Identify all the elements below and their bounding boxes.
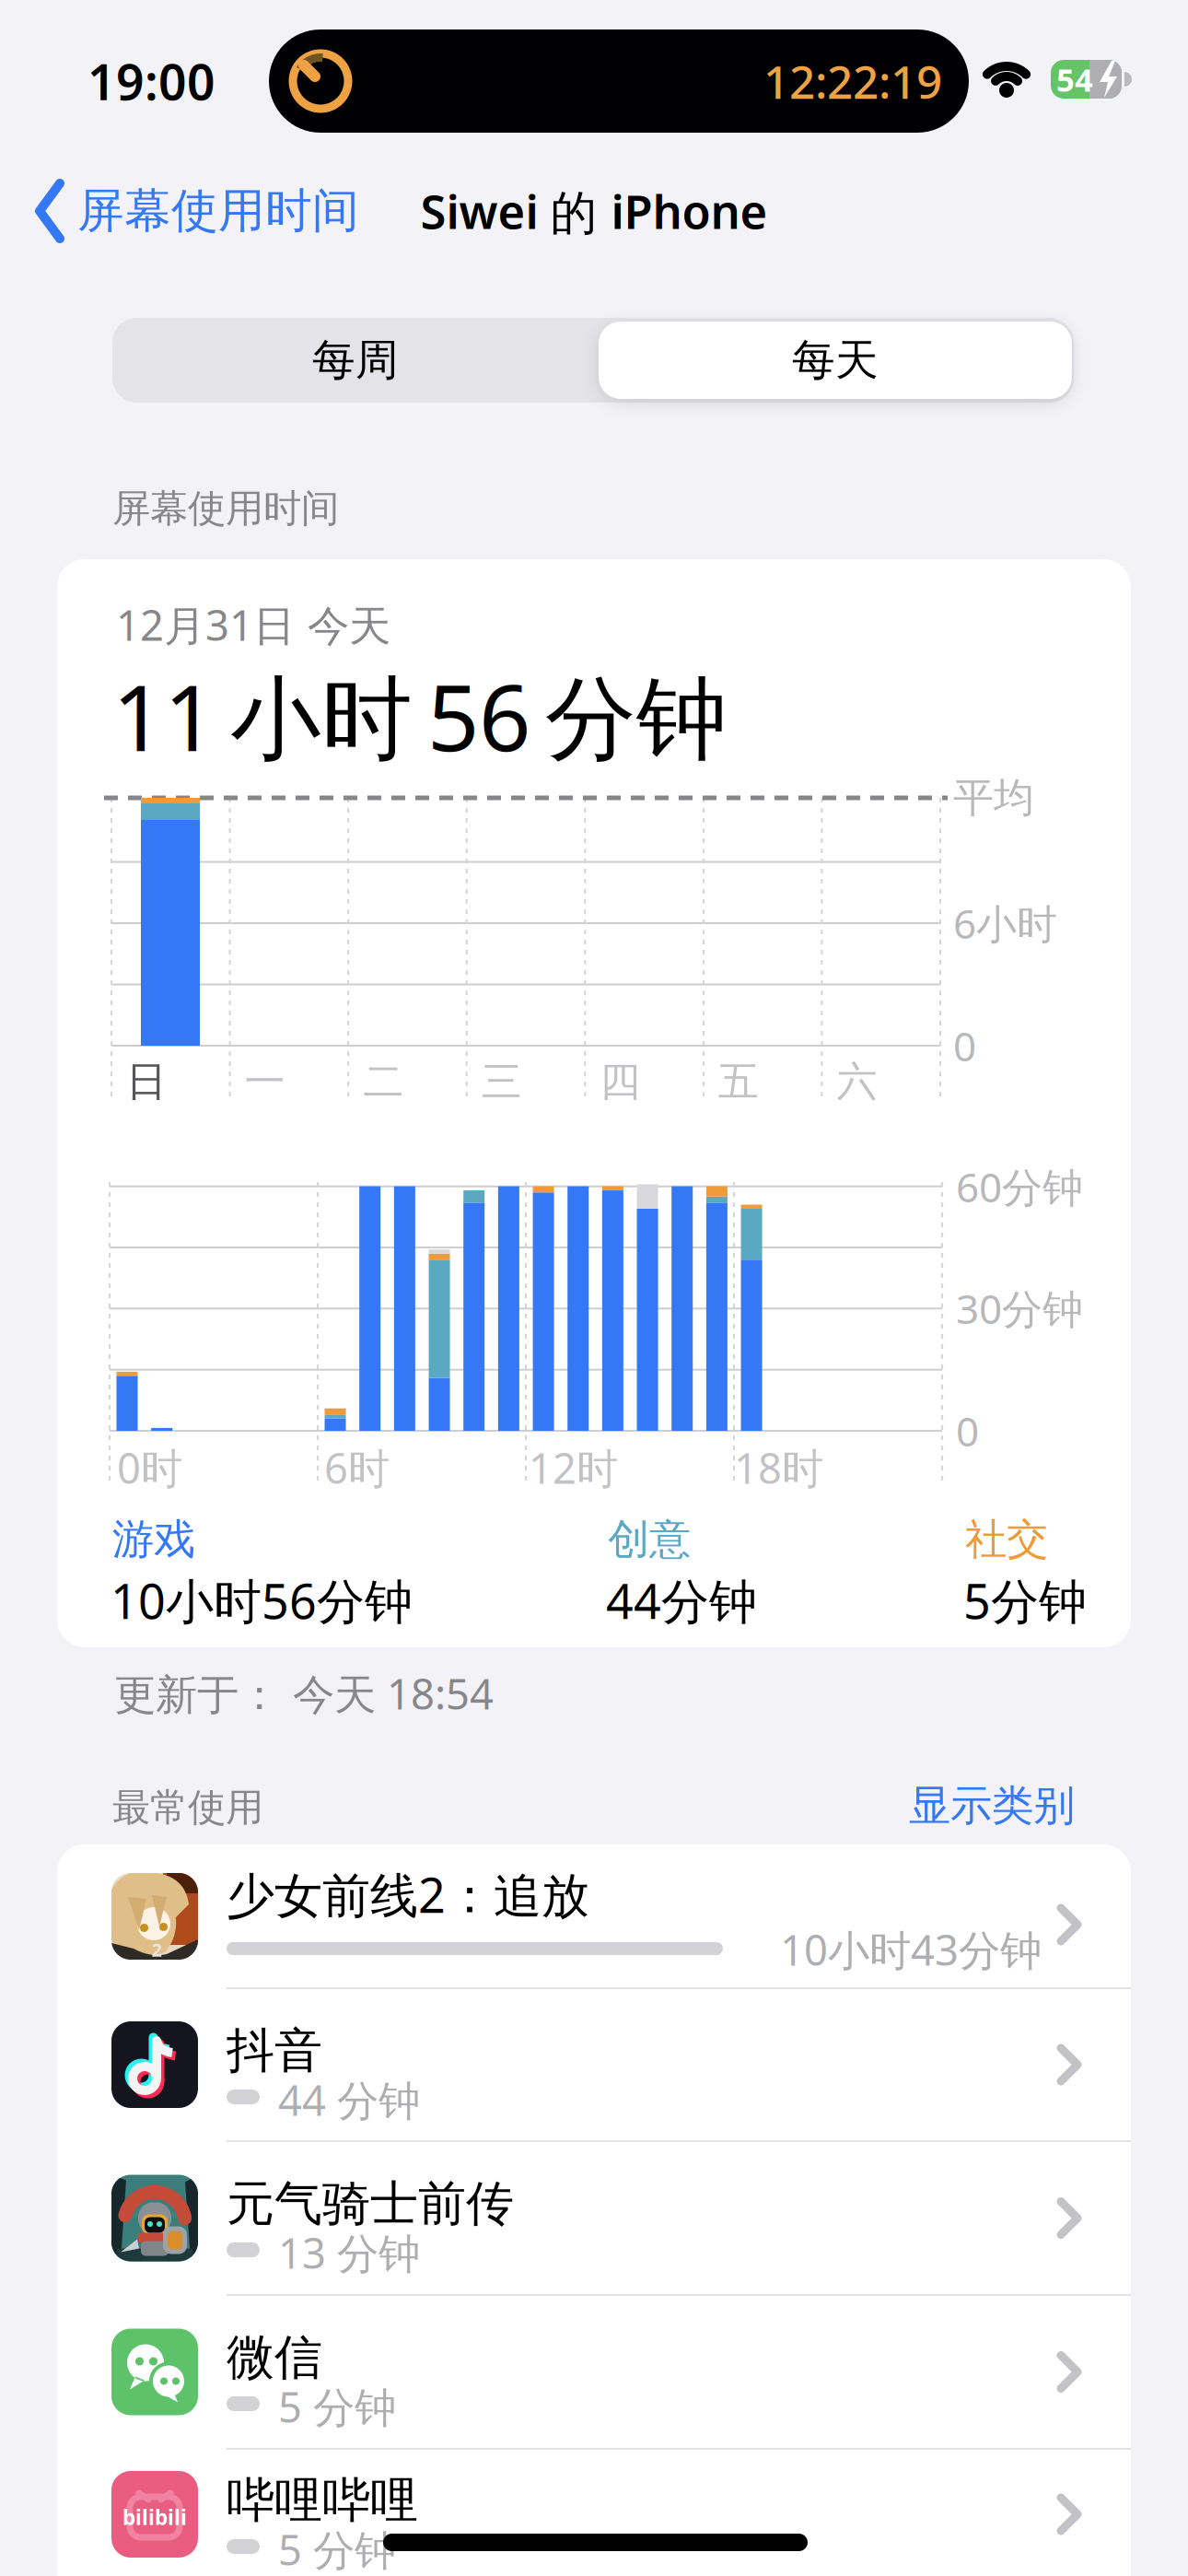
staticText: 54 xyxy=(1056,58,1093,100)
staticText: 12月31日 今天 xyxy=(116,597,390,652)
staticText: 六 xyxy=(837,1057,877,1107)
staticText: 6时 xyxy=(324,1440,390,1495)
staticText: bilibili xyxy=(122,2503,187,2531)
staticText: 抖音 xyxy=(227,2021,322,2080)
button[interactable]: 微信 xyxy=(57,2295,1131,2449)
staticText: 五 xyxy=(718,1057,759,1107)
staticText: 每周 xyxy=(312,334,399,387)
button[interactable]: 每天 xyxy=(599,322,1072,399)
staticText: 每天 xyxy=(792,334,879,387)
staticText: 四 xyxy=(600,1057,640,1107)
staticText: 30分钟 xyxy=(956,1281,1083,1335)
staticText: 最常使用 xyxy=(112,1784,263,1831)
staticText: 5 分钟 xyxy=(278,2522,396,2576)
button[interactable]: 2 xyxy=(57,1844,1131,1988)
staticText: 日 xyxy=(126,1057,167,1107)
staticText: 屏幕使用时间 xyxy=(112,485,339,532)
staticText: 10小时43分钟 xyxy=(780,1922,1042,1977)
staticText: 创意 xyxy=(608,1514,691,1565)
staticText: 游戏 xyxy=(112,1514,195,1565)
button[interactable]: bilibili xyxy=(57,2449,1131,2576)
staticText: 一 xyxy=(245,1057,285,1107)
staticText: 0时 xyxy=(117,1440,182,1495)
staticText: 11 小时 56 分钟 xyxy=(112,656,728,776)
staticText: 元气骑士前传 xyxy=(227,2174,514,2233)
staticText: 44 分钟 xyxy=(278,2072,420,2127)
staticText: 10小时56分钟 xyxy=(111,1569,413,1632)
staticText: 哔哩哔哩 xyxy=(227,2471,418,2530)
button[interactable]: 每周 xyxy=(0,0,486,85)
staticText: 微信 xyxy=(227,2328,322,2387)
staticText: 13 分钟 xyxy=(278,2225,420,2280)
staticText: 0 xyxy=(956,1404,979,1458)
staticText: 60分钟 xyxy=(956,1160,1083,1214)
staticText: 社交 xyxy=(965,1514,1048,1565)
button[interactable]: 屏幕使用时间 xyxy=(35,181,359,241)
staticText: 二 xyxy=(363,1057,403,1107)
staticText: Siwei 的 iPhone xyxy=(420,180,768,242)
staticText: 5 分钟 xyxy=(278,2379,396,2434)
staticText: 三 xyxy=(481,1057,522,1107)
staticText: 平均 xyxy=(953,773,1034,823)
staticText: 44分钟 xyxy=(606,1569,757,1632)
staticText: 屏幕使用时间 xyxy=(77,182,359,240)
button[interactable]: 抖音 xyxy=(57,1988,1131,2141)
staticText: 12时 xyxy=(529,1440,618,1495)
staticText: 更新于： 今天 18:54 xyxy=(114,1666,494,1721)
staticText: 少女前线2：追放 xyxy=(227,1862,589,1926)
staticText: 19:00 xyxy=(87,48,215,114)
staticText: 6小时 xyxy=(953,896,1057,950)
staticText: 2 xyxy=(151,1937,162,1962)
staticText: 0 xyxy=(953,1019,976,1073)
staticText: 显示类别 xyxy=(909,1780,1075,1831)
button[interactable]: 元气骑士前传 xyxy=(57,2141,1131,2295)
staticText: 18时 xyxy=(734,1440,823,1495)
staticText: 5分钟 xyxy=(963,1569,1087,1632)
staticText: 12:22:19 xyxy=(763,51,942,111)
